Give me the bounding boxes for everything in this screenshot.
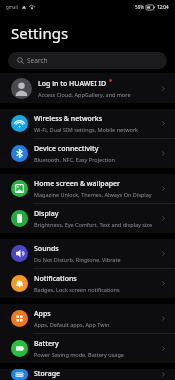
other: Open — [160, 215, 167, 222]
staticText: Battery — [34, 339, 59, 349]
staticText: Device connectivity — [34, 144, 99, 154]
staticText: Notifications — [34, 274, 77, 284]
staticText: Display — [34, 209, 59, 219]
staticText: Home screen & wallpaper — [34, 179, 120, 189]
staticText: Log in to HUAWEI ID — [38, 79, 107, 89]
other: Open — [160, 150, 167, 157]
button[interactable]: Log in to HUAWEI ID — [0, 73, 175, 103]
staticText: Storage — [34, 369, 60, 379]
staticText: Access Cloud, AppGallery, and more — [38, 91, 131, 98]
staticText: Wi-Fi, Dual SIM settings, Mobile network — [34, 126, 138, 133]
staticText: Sounds — [34, 244, 59, 254]
other: Open — [160, 185, 167, 192]
staticText: Search — [27, 56, 48, 65]
staticText: Brightness, Eye Comfort, Text and displa… — [34, 221, 153, 228]
button[interactable]: Apps — [0, 304, 175, 333]
staticText: Apps — [34, 309, 51, 319]
button[interactable]: Wireless & networks — [0, 109, 175, 138]
other: Open — [160, 120, 167, 127]
button[interactable]: Battery — [0, 334, 175, 363]
other: Open — [160, 371, 167, 378]
other: Open — [160, 250, 167, 257]
staticText: Do Not Disturb, Ringtone, Vibrate — [34, 256, 121, 263]
staticText: gmail — [6, 4, 18, 10]
staticText: Apps, Default apps, App Twin — [34, 321, 110, 328]
staticText: Badges, Lock screen notifications — [34, 286, 120, 293]
button[interactable]: Storage — [0, 369, 175, 380]
staticText: 58% — [135, 4, 144, 10]
button[interactable]: Device connectivity — [0, 139, 175, 168]
staticText: Power Saving mode, Battery usage — [34, 351, 124, 358]
button[interactable]: Search — [8, 52, 167, 69]
staticText: Magazine Unlock, Themes, Always On Displ… — [34, 191, 152, 198]
button[interactable]: Notifications — [0, 269, 175, 298]
other: Open — [160, 315, 167, 322]
other: Open — [160, 345, 167, 352]
staticText: Settings — [11, 23, 69, 43]
other: Open — [160, 85, 167, 92]
other: Open — [160, 280, 167, 287]
staticText: Wireless & networks — [34, 114, 103, 124]
staticText: 12:04 — [157, 4, 169, 10]
button[interactable]: Sounds — [0, 239, 175, 268]
staticText: Bluetooth, NFC, Easy Projection — [34, 156, 115, 163]
button[interactable]: Display — [0, 204, 175, 233]
button[interactable]: Home screen & wallpaper — [0, 174, 175, 203]
